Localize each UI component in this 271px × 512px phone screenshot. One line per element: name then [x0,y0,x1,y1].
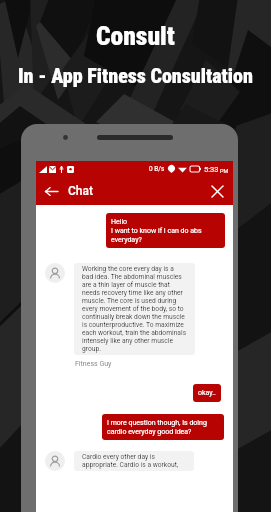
button[interactable]: okay.. [193,384,221,402]
staticText: okay.. [198,389,216,397]
button[interactable]: Working the core every day is a bad idea… [74,263,195,355]
button[interactable]: Cardio every other day is appropriate. C… [74,451,194,471]
staticText: In - App Fitness Consultation [18,64,253,87]
button[interactable]: Close [208,182,226,200]
staticText: PM [220,168,229,174]
button[interactable]: I more question though, Is doing cardio … [102,414,224,440]
staticText: Consult [96,21,175,51]
staticText: Fitness Guy [75,360,112,368]
button[interactable]: Hello I want to know if I can do abs eve… [106,213,225,248]
staticText: Cardio every other day is appropriate. C… [82,453,186,469]
staticText: Chat [68,184,93,198]
staticText: Hello I want to know if I can do abs eve… [111,218,202,243]
staticText: Working the core every day is a bad idea… [82,265,187,353]
button[interactable]: Back [42,182,60,200]
staticText: I more question though, Is doing cardio … [107,419,207,435]
staticText: 0 B/s [149,165,165,173]
staticText: 5:33 [204,165,219,174]
